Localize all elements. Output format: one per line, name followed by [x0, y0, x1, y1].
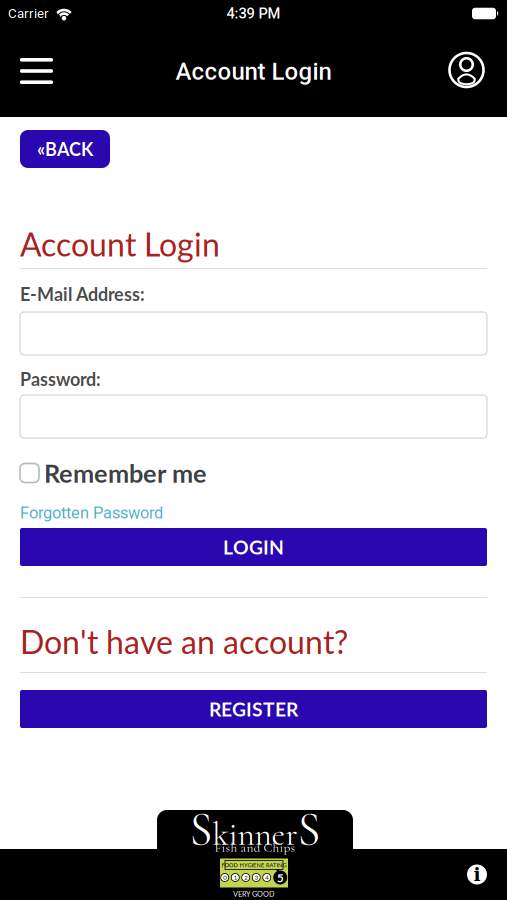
staticText: Remember me — [44, 458, 207, 488]
staticText: REGISTER — [209, 697, 298, 721]
button[interactable]: REGISTER — [20, 690, 487, 728]
staticText: 4:39 PM — [226, 5, 280, 22]
staticText: Account Login — [175, 57, 331, 85]
button[interactable] — [20, 312, 487, 355]
staticText: Don't have an account? — [20, 622, 348, 661]
staticText: Forgotten Password — [20, 503, 163, 523]
staticText: 2 — [244, 874, 247, 881]
button[interactable]: «BACK — [20, 130, 110, 168]
staticText: «BACK — [37, 138, 93, 160]
staticText: i — [473, 863, 480, 885]
button[interactable] — [15, 51, 58, 91]
staticText: E-Mail Address: — [20, 283, 145, 305]
staticText: LOGIN — [223, 535, 284, 559]
staticText: 5 — [277, 870, 284, 885]
staticText: 1 — [234, 874, 237, 881]
staticText: Account Login — [20, 225, 220, 263]
staticText: 0 — [223, 874, 226, 881]
button[interactable]: i — [465, 862, 489, 886]
staticText: 4 — [265, 874, 268, 881]
staticText: kinner — [212, 814, 297, 854]
staticText: S — [297, 802, 320, 858]
button[interactable] — [20, 395, 487, 438]
button[interactable]: Remember me — [20, 458, 487, 488]
button[interactable]: Forgotten Password — [20, 503, 487, 523]
staticText: S — [189, 802, 212, 858]
staticText: Fish and Chips — [214, 839, 295, 855]
staticText: VERY GOOD — [233, 890, 275, 898]
staticText: Carrier — [8, 6, 49, 21]
staticText: Password: — [20, 368, 101, 390]
staticText: FOOD HYGIENE RATING — [189, 858, 319, 872]
button[interactable] — [446, 50, 486, 90]
button[interactable]: LOGIN — [20, 528, 487, 566]
staticText: 3 — [255, 874, 258, 881]
